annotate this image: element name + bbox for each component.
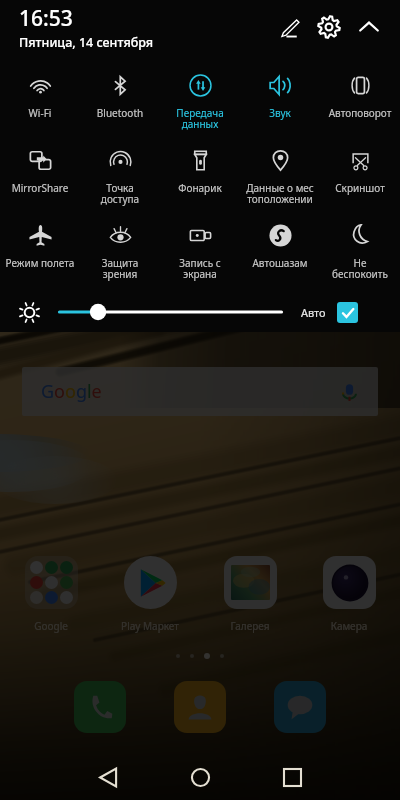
button[interactable] — [58, 295, 283, 329]
button[interactable]: Wi-Fi — [0, 74, 80, 149]
button[interactable]: Автошазам — [240, 224, 320, 295]
button[interactable]: Скриншот — [320, 149, 400, 224]
staticText: Точка доступа — [80, 181, 160, 206]
staticText: Запись с экрана — [160, 256, 240, 281]
staticText: Защита зрения — [80, 256, 160, 281]
button[interactable]: Edit — [269, 7, 309, 47]
button[interactable]: Collapse panel — [349, 7, 389, 47]
button[interactable]: Settings — [309, 7, 349, 47]
button[interactable]: Google — [2, 556, 100, 633]
button[interactable]: Contacts — [174, 681, 226, 733]
button[interactable]: Запись с экрана — [160, 224, 240, 295]
staticText: Bluetooth — [80, 106, 160, 120]
button[interactable]: Данные о мес тоположении — [240, 149, 320, 224]
button[interactable]: Фонарик — [160, 149, 240, 224]
button[interactable]: Phone — [74, 681, 126, 733]
button[interactable]: Камера — [300, 556, 398, 633]
button[interactable]: Автоповорот — [320, 74, 400, 149]
staticText: Звук — [240, 106, 320, 120]
button[interactable]: Messages — [274, 681, 326, 733]
button[interactable]: Защита зрения — [80, 224, 160, 295]
button[interactable]: Bluetooth — [80, 74, 160, 149]
staticText: Галерея — [201, 619, 299, 633]
button[interactable]: MirrorShare — [0, 149, 80, 224]
staticText: Google — [2, 619, 100, 633]
staticText: Не беспокоить — [320, 256, 400, 281]
staticText: Скриншот — [320, 181, 400, 195]
staticText: 16:53 — [19, 4, 73, 33]
button[interactable]: Google — [22, 367, 378, 416]
button[interactable]: Передача данных — [160, 74, 240, 149]
button[interactable]: Back — [80, 754, 136, 800]
button[interactable]: Play Маркет — [101, 556, 199, 633]
staticText: Передача данных — [160, 106, 240, 131]
staticText: Пятница, 14 сентября — [19, 34, 154, 51]
staticText: Камера — [300, 619, 398, 633]
staticText: Play Маркет — [101, 619, 199, 633]
staticText: Wi-Fi — [0, 106, 80, 120]
button[interactable]: Режим полета — [0, 224, 80, 295]
staticText: Авто — [301, 305, 326, 320]
staticText: Режим полета — [0, 256, 80, 270]
button[interactable]: Точка доступа — [80, 149, 160, 224]
staticText: Фонарик — [160, 181, 240, 195]
staticText: Данные о мес тоположении — [240, 181, 320, 206]
staticText: Автоповорот — [320, 106, 400, 120]
button[interactable]: Галерея — [201, 556, 299, 633]
staticText: MirrorShare — [0, 181, 80, 195]
staticText: Google — [41, 379, 102, 404]
button[interactable]: Авто — [283, 295, 400, 329]
button[interactable]: Brightness — [0, 295, 58, 329]
button[interactable]: Voice search — [336, 379, 362, 405]
staticText: Автошазам — [240, 256, 320, 270]
button[interactable]: Home — [172, 754, 228, 800]
button[interactable]: Не беспокоить — [320, 224, 400, 295]
button[interactable]: Звук — [240, 74, 320, 149]
button[interactable]: Recent apps — [264, 754, 320, 800]
